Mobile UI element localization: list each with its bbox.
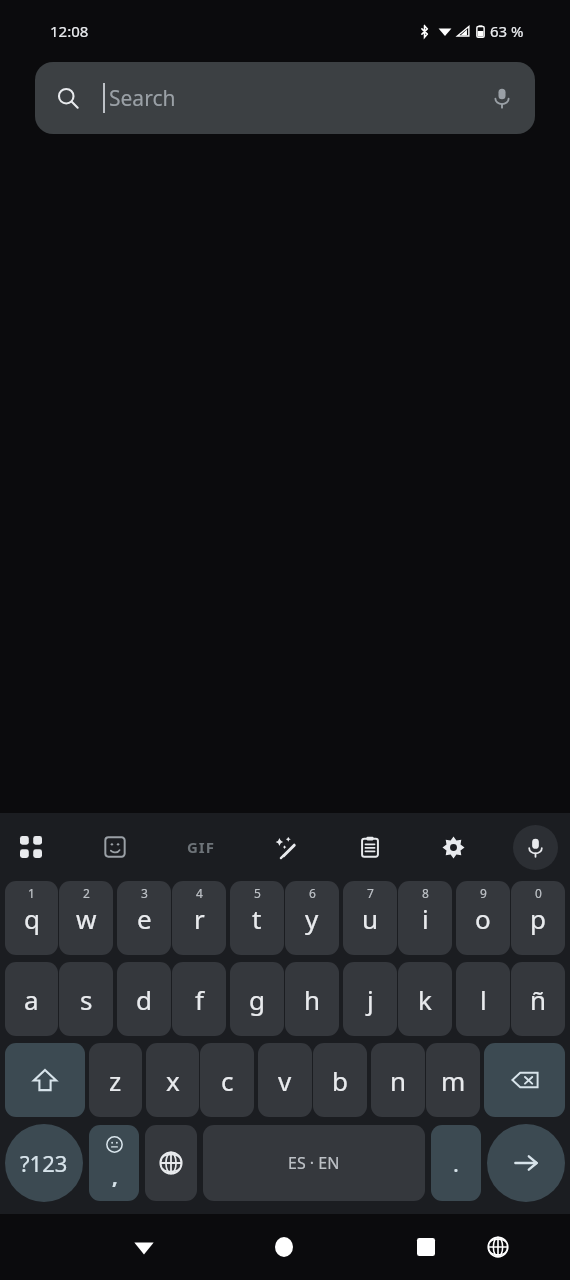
button[interactable]: Settings <box>432 826 474 868</box>
staticText: 63 % <box>490 21 524 41</box>
staticText: d <box>136 982 152 1017</box>
staticText: k <box>418 982 432 1017</box>
staticText: v <box>278 1063 292 1098</box>
staticText: h <box>304 982 321 1017</box>
button[interactable]: t <box>230 881 284 955</box>
staticText: g <box>249 982 265 1017</box>
staticText: 9 <box>480 885 487 901</box>
staticText: , <box>112 1163 118 1190</box>
staticText: 4 <box>196 885 203 901</box>
staticText: e <box>137 901 152 936</box>
staticText: l <box>480 982 487 1017</box>
button[interactable]: Recents <box>402 1223 450 1271</box>
button[interactable]: i <box>398 881 452 955</box>
staticText: f <box>195 982 204 1017</box>
button[interactable]: p <box>511 881 565 955</box>
button[interactable]: j <box>343 962 397 1036</box>
button[interactable]: n <box>371 1043 425 1117</box>
staticText: 12:08 <box>50 21 89 41</box>
button[interactable]: c <box>200 1043 254 1117</box>
staticText: GIF <box>187 837 215 857</box>
staticText: 1 <box>28 885 35 901</box>
button[interactable]: m <box>426 1043 480 1117</box>
staticText: s <box>80 982 93 1017</box>
button[interactable]: r <box>172 881 226 955</box>
button[interactable]: Enter <box>487 1124 565 1202</box>
staticText: 6 <box>309 885 316 901</box>
staticText: 5 <box>254 885 261 901</box>
staticText: x <box>166 1063 180 1098</box>
button[interactable]: Hide keyboard <box>120 1223 168 1271</box>
button[interactable]: Voice input <box>513 825 558 870</box>
button[interactable]: v <box>258 1043 312 1117</box>
button[interactable]: b <box>313 1043 367 1117</box>
button[interactable]: . <box>431 1125 481 1201</box>
staticText: j <box>367 982 374 1017</box>
button[interactable]: s <box>59 962 113 1036</box>
staticText: c <box>221 1063 234 1098</box>
button[interactable]: Apps <box>10 826 52 868</box>
staticText: a <box>24 982 39 1017</box>
button[interactable]: a <box>5 962 58 1036</box>
button[interactable]: Shift <box>5 1043 85 1117</box>
button[interactable]: GIF <box>178 824 224 870</box>
staticText: t <box>252 901 262 936</box>
staticText: z <box>109 1063 122 1098</box>
button[interactable]: u <box>343 881 397 955</box>
button[interactable]: Home <box>260 1223 308 1271</box>
staticText: 0 <box>535 885 542 901</box>
button[interactable]: l <box>456 962 510 1036</box>
button[interactable]: Search <box>35 62 535 134</box>
button[interactable]: Stickers <box>94 826 136 868</box>
staticText: Search <box>109 84 176 113</box>
staticText: y <box>305 901 319 936</box>
button[interactable]: ñ <box>511 962 565 1036</box>
button[interactable]: w <box>59 881 113 955</box>
staticText: ES · EN <box>288 1152 340 1174</box>
button[interactable]: k <box>398 962 452 1036</box>
button[interactable]: Switch input method <box>474 1223 522 1271</box>
staticText: n <box>390 1063 407 1098</box>
staticText: o <box>475 901 491 936</box>
staticText: i <box>422 901 429 936</box>
button[interactable]: Clipboard <box>349 826 391 868</box>
staticText: q <box>24 901 40 936</box>
staticText: r <box>194 901 205 936</box>
staticText: ?123 <box>20 1148 68 1178</box>
button[interactable]: e <box>117 881 171 955</box>
button[interactable]: Emoji and comma <box>89 1125 139 1201</box>
button[interactable]: x <box>146 1043 199 1117</box>
button[interactable]: f <box>172 962 226 1036</box>
staticText: ñ <box>530 982 547 1017</box>
staticText: . <box>453 1148 459 1178</box>
button[interactable]: d <box>117 962 171 1036</box>
staticText: b <box>332 1063 348 1098</box>
staticText: 2 <box>83 885 90 901</box>
button[interactable]: g <box>230 962 284 1036</box>
button[interactable]: ?123 <box>5 1124 83 1202</box>
button[interactable]: o <box>456 881 510 955</box>
button[interactable]: Change language <box>145 1125 197 1201</box>
button[interactable]: q <box>5 881 58 955</box>
button[interactable]: h <box>285 962 339 1036</box>
staticText: 7 <box>367 885 374 901</box>
staticText: 3 <box>141 885 148 901</box>
button[interactable]: y <box>285 881 339 955</box>
button[interactable]: z <box>89 1043 142 1117</box>
staticText: p <box>530 901 546 936</box>
staticText: w <box>76 901 97 936</box>
staticText: m <box>441 1063 466 1098</box>
staticText: u <box>362 901 379 936</box>
button[interactable]: Backspace <box>484 1043 565 1117</box>
other: Voice search <box>491 87 513 109</box>
button[interactable]: Edit <box>264 826 306 868</box>
other: Search <box>57 87 79 109</box>
staticText: 8 <box>422 885 429 901</box>
button[interactable]: ES · EN <box>203 1125 425 1201</box>
